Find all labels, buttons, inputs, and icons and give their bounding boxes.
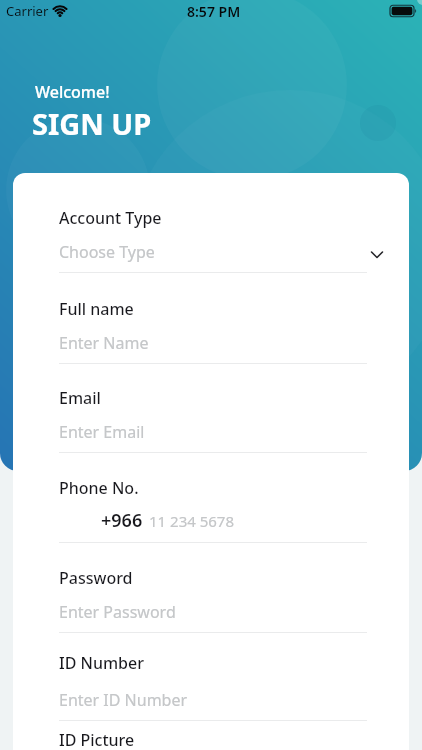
staticText: Choose Type bbox=[59, 241, 155, 263]
staticText: Password bbox=[59, 567, 133, 589]
staticText: Enter Name bbox=[59, 332, 149, 354]
button[interactable]: ID Number bbox=[59, 652, 367, 729]
staticText: Phone No. bbox=[59, 477, 139, 499]
staticText: 11 234 5678 bbox=[149, 511, 235, 531]
button[interactable]: Email bbox=[59, 387, 367, 477]
staticText: Enter Password bbox=[59, 601, 176, 623]
staticText: 8:57 PM bbox=[187, 2, 241, 21]
button[interactable]: Phone No. bbox=[59, 477, 367, 567]
staticText: Enter Email bbox=[59, 421, 145, 443]
staticText: SIGN UP bbox=[32, 104, 152, 143]
staticText: Enter ID Number bbox=[59, 689, 188, 711]
staticText: Full name bbox=[59, 298, 134, 320]
staticText: Email bbox=[59, 387, 101, 409]
staticText: Welcome! bbox=[35, 81, 110, 103]
button[interactable]: Account Type bbox=[59, 207, 367, 298]
staticText: ID Picture bbox=[59, 729, 135, 750]
staticText: ID Number bbox=[59, 652, 144, 674]
staticText: Account Type bbox=[59, 207, 162, 229]
staticText: +966 bbox=[101, 508, 143, 533]
button[interactable]: Password bbox=[59, 567, 367, 652]
staticText: Carrier bbox=[6, 2, 49, 20]
button[interactable]: Full name bbox=[59, 298, 367, 387]
